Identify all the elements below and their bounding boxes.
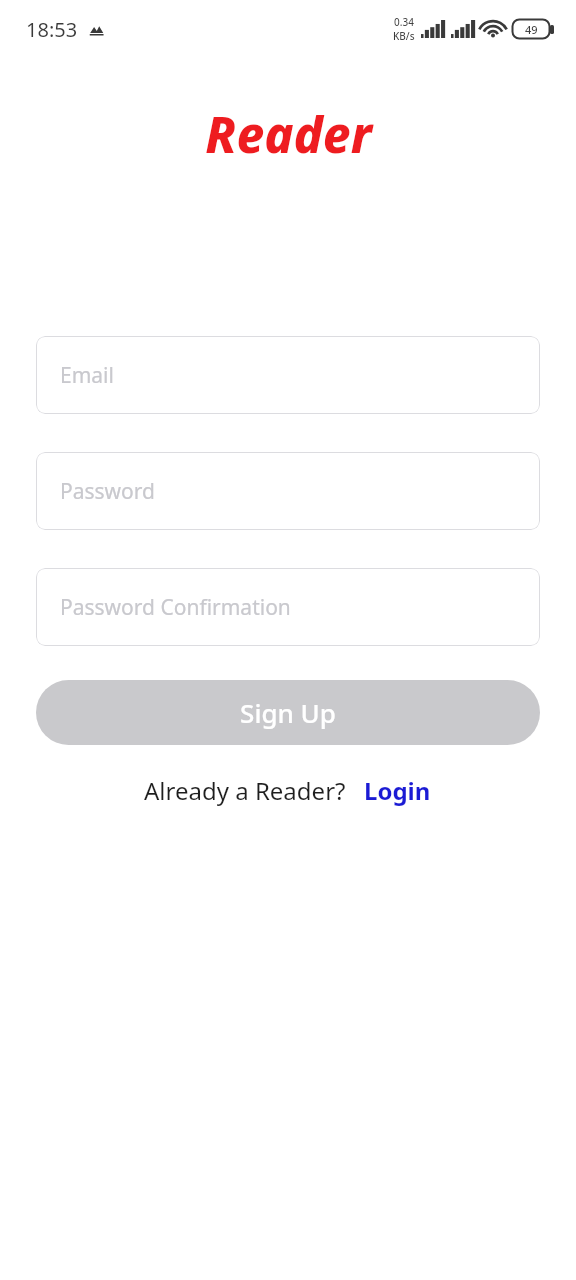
staticText: 0.34 [394,15,414,29]
staticText: 49 [525,22,538,37]
button[interactable]: Sign Up [36,680,540,745]
button[interactable]: Password [36,452,540,530]
staticText: Password [60,477,155,506]
staticText: Reader [205,101,372,168]
button[interactable]: Password Confirmation [36,568,540,646]
staticText: KB/s [393,29,415,43]
staticText: Password Confirmation [60,593,291,622]
staticText: Login [364,774,431,807]
staticText: Sign Up [240,695,336,730]
button[interactable]: Login [362,770,433,811]
staticText: 18:53 [26,16,78,43]
staticText: Email [60,361,114,390]
button[interactable]: Email [36,336,540,414]
staticText: Already a Reader? [144,774,346,807]
